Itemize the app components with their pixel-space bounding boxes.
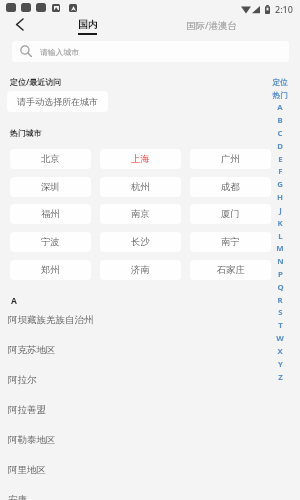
button[interactable]: N <box>272 255 288 268</box>
staticText: 郑州 <box>41 264 60 276</box>
staticText: P <box>278 269 283 280</box>
staticText: 宁波 <box>41 236 60 248</box>
button[interactable]: L <box>272 230 288 243</box>
staticText: W <box>276 333 284 344</box>
button[interactable]: K <box>272 217 288 230</box>
staticText: E <box>278 154 283 165</box>
button[interactable]: 济南 <box>100 260 181 280</box>
staticText: 阿里地区 <box>8 464 46 476</box>
staticText: Y <box>278 359 283 370</box>
staticText: Z <box>278 372 283 383</box>
staticText: 杭州 <box>131 181 150 193</box>
staticText: M <box>276 243 284 254</box>
button[interactable]: 厦门 <box>190 204 271 224</box>
button[interactable]: 深圳 <box>10 177 91 197</box>
staticText: G <box>277 179 283 190</box>
button[interactable]: 安康 <box>0 485 300 500</box>
staticText: 阿克苏地区 <box>8 344 56 356</box>
button[interactable]: R <box>272 294 288 307</box>
button[interactable]: 杭州 <box>100 177 181 197</box>
button[interactable]: H <box>272 191 288 204</box>
staticText: 阿拉善盟 <box>8 404 46 416</box>
button[interactable]: Back <box>7 13 31 36</box>
staticText: 石家庄 <box>217 264 245 276</box>
staticText: 长沙 <box>131 236 150 248</box>
staticText: Q <box>277 282 284 293</box>
button[interactable]: W <box>272 332 288 345</box>
staticText: H <box>277 192 283 203</box>
staticText: 济南 <box>131 264 150 276</box>
button[interactable]: 北京 <box>10 149 91 169</box>
staticText: 阿拉尔 <box>8 374 37 386</box>
button[interactable]: M <box>272 242 288 255</box>
staticText: 定位 <box>272 78 288 88</box>
staticText: A <box>277 102 283 113</box>
button[interactable]: A <box>272 101 288 114</box>
staticText: 广州 <box>221 153 240 165</box>
button[interactable]: 热门 <box>272 89 288 102</box>
staticText: 北京 <box>41 153 60 165</box>
button[interactable]: F <box>272 165 288 178</box>
button[interactable]: B <box>272 114 288 127</box>
staticText: 请输入城市 <box>40 47 79 57</box>
button[interactable]: 长沙 <box>100 232 181 252</box>
button[interactable]: J <box>272 204 288 217</box>
button[interactable]: E <box>272 153 288 166</box>
staticText: L <box>278 231 283 242</box>
staticText: N <box>277 256 284 267</box>
staticText: R <box>277 295 283 306</box>
button[interactable]: 上海 <box>100 149 181 169</box>
button[interactable]: 阿里地区 <box>0 455 300 485</box>
staticText: K <box>277 218 283 229</box>
staticText: 热门城市 <box>10 128 42 138</box>
staticText: 上海 <box>131 153 150 165</box>
staticText: 请手动选择所在城市 <box>17 96 98 107</box>
button[interactable]: Y <box>272 358 288 371</box>
button[interactable]: 请手动选择所在城市 <box>7 91 108 112</box>
staticText: 南京 <box>131 208 150 220</box>
button[interactable]: 阿拉善盟 <box>0 395 300 425</box>
button[interactable]: X <box>272 345 288 358</box>
staticText: 热门 <box>272 91 288 101</box>
staticText: 南宁 <box>221 236 240 248</box>
staticText: 国际/港澳台 <box>186 19 238 32</box>
staticText: 深圳 <box>41 181 60 193</box>
staticText: 2:10 <box>275 3 293 15</box>
staticText: J <box>279 205 282 216</box>
button[interactable]: 南京 <box>100 204 181 224</box>
button[interactable]: Q <box>272 281 288 294</box>
staticText: T <box>278 320 283 331</box>
button[interactable]: 成都 <box>190 177 271 197</box>
staticText: 国内 <box>78 19 98 31</box>
staticText: 定位/最近访问 <box>10 76 62 87</box>
button[interactable]: 宁波 <box>10 232 91 252</box>
button[interactable]: 阿勒泰地区 <box>0 425 300 455</box>
button[interactable]: 石家庄 <box>190 260 271 280</box>
button[interactable]: 郑州 <box>10 260 91 280</box>
button[interactable]: 请输入城市 <box>12 41 289 62</box>
button[interactable]: C <box>272 127 288 140</box>
button[interactable]: Z <box>272 371 288 384</box>
staticText: 安康 <box>8 494 27 500</box>
button[interactable]: G <box>272 178 288 191</box>
button[interactable]: 南宁 <box>190 232 271 252</box>
button[interactable]: 国内 <box>68 15 108 36</box>
staticText: 成都 <box>221 181 240 193</box>
button[interactable]: 阿克苏地区 <box>0 335 300 365</box>
staticText: A <box>11 295 17 307</box>
button[interactable]: T <box>272 319 288 332</box>
button[interactable]: 广州 <box>190 149 271 169</box>
staticText: 阿勒泰地区 <box>8 434 56 446</box>
button[interactable]: P <box>272 268 288 281</box>
button[interactable]: 阿拉尔 <box>0 365 300 395</box>
staticText: 福州 <box>41 208 60 220</box>
staticText: 阿坝藏族羌族自治州 <box>8 314 94 326</box>
button[interactable]: 福州 <box>10 204 91 224</box>
button[interactable]: D <box>272 140 288 153</box>
button[interactable]: 阿坝藏族羌族自治州 <box>0 305 300 335</box>
button[interactable]: 定位 <box>272 76 288 89</box>
button[interactable]: 国际/港澳台 <box>182 18 242 33</box>
staticText: C <box>277 128 283 139</box>
button[interactable]: S <box>272 306 288 319</box>
staticText: B <box>277 115 283 126</box>
